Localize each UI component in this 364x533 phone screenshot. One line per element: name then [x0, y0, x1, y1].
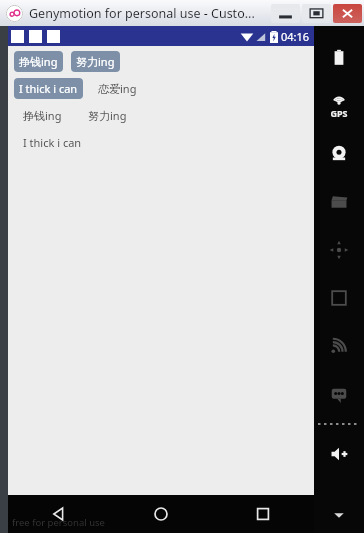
button[interactable]: 挣钱ing [14, 51, 63, 72]
button[interactable]: Virtual sensors [314, 226, 364, 274]
button[interactable]: GPS [314, 82, 364, 130]
button[interactable]: Video recorder [314, 178, 364, 226]
button[interactable]: Phone and SMS [314, 370, 364, 418]
staticText: I thick i can [23, 135, 82, 150]
button[interactable]: Network [314, 322, 364, 370]
staticText: free for personal use [12, 516, 105, 529]
staticText: 挣钱ing [23, 108, 62, 123]
button[interactable]: 挣钱ing [18, 105, 67, 126]
button[interactable]: Maximize [302, 4, 331, 23]
button[interactable]: Close [333, 4, 362, 23]
button[interactable]: Camera [314, 130, 364, 178]
button[interactable]: Home [110, 495, 212, 533]
button[interactable]: Battery [314, 34, 364, 82]
staticText: I thick i can [19, 81, 78, 96]
button[interactable]: I thick i can [18, 132, 87, 153]
staticText: 努力ing [88, 108, 127, 123]
staticText: 恋爱ing [98, 81, 137, 96]
staticText: 04:16 [281, 29, 310, 44]
staticText: GPS [330, 107, 348, 119]
button[interactable]: Identifiers [314, 274, 364, 322]
button[interactable]: More tools [314, 501, 364, 529]
button[interactable]: Back [8, 495, 110, 533]
button[interactable]: 恋爱ing [93, 78, 142, 99]
button[interactable]: 努力ing [83, 105, 132, 126]
staticText: Genymotion for personal use - Custo... [29, 5, 255, 22]
button[interactable]: 努力ing [71, 51, 120, 72]
staticText: 努力ing [76, 54, 115, 69]
button[interactable]: Minimize [271, 4, 300, 23]
button[interactable]: I thick i can [14, 78, 83, 99]
staticText: 挣钱ing [19, 54, 58, 69]
button[interactable]: Volume up [314, 430, 364, 478]
button[interactable]: Recents [212, 495, 314, 533]
